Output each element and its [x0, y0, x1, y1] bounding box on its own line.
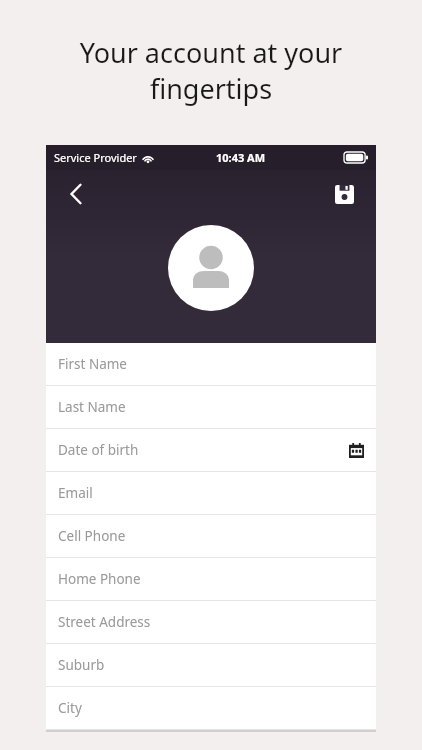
- staticText: Street Address: [58, 613, 151, 631]
- staticText: Your account at your fingertips: [0, 34, 422, 107]
- button[interactable]: Date of birth: [46, 429, 376, 472]
- staticText: Last Name: [58, 398, 126, 416]
- button[interactable]: Last Name: [46, 386, 376, 429]
- button[interactable]: First Name: [46, 343, 376, 386]
- staticText: Date of birth: [58, 441, 139, 459]
- button[interactable]: Back: [54, 172, 98, 216]
- staticText: Cell Phone: [58, 527, 126, 545]
- button[interactable]: Email: [46, 472, 376, 515]
- button[interactable]: Street Address: [46, 601, 376, 644]
- staticText: City: [58, 699, 82, 717]
- staticText: 10:43 AM: [216, 150, 266, 165]
- button[interactable]: City: [46, 687, 376, 730]
- button[interactable]: Save: [322, 172, 366, 216]
- staticText: Email: [58, 484, 93, 502]
- staticText: Suburb: [58, 656, 105, 674]
- button[interactable]: Profile photo: [168, 225, 254, 311]
- button[interactable]: Suburb: [46, 644, 376, 687]
- button[interactable]: Home Phone: [46, 558, 376, 601]
- staticText: Home Phone: [58, 570, 141, 588]
- staticText: First Name: [58, 355, 127, 373]
- staticText: Service Provider: [54, 150, 137, 165]
- button[interactable]: Cell Phone: [46, 515, 376, 558]
